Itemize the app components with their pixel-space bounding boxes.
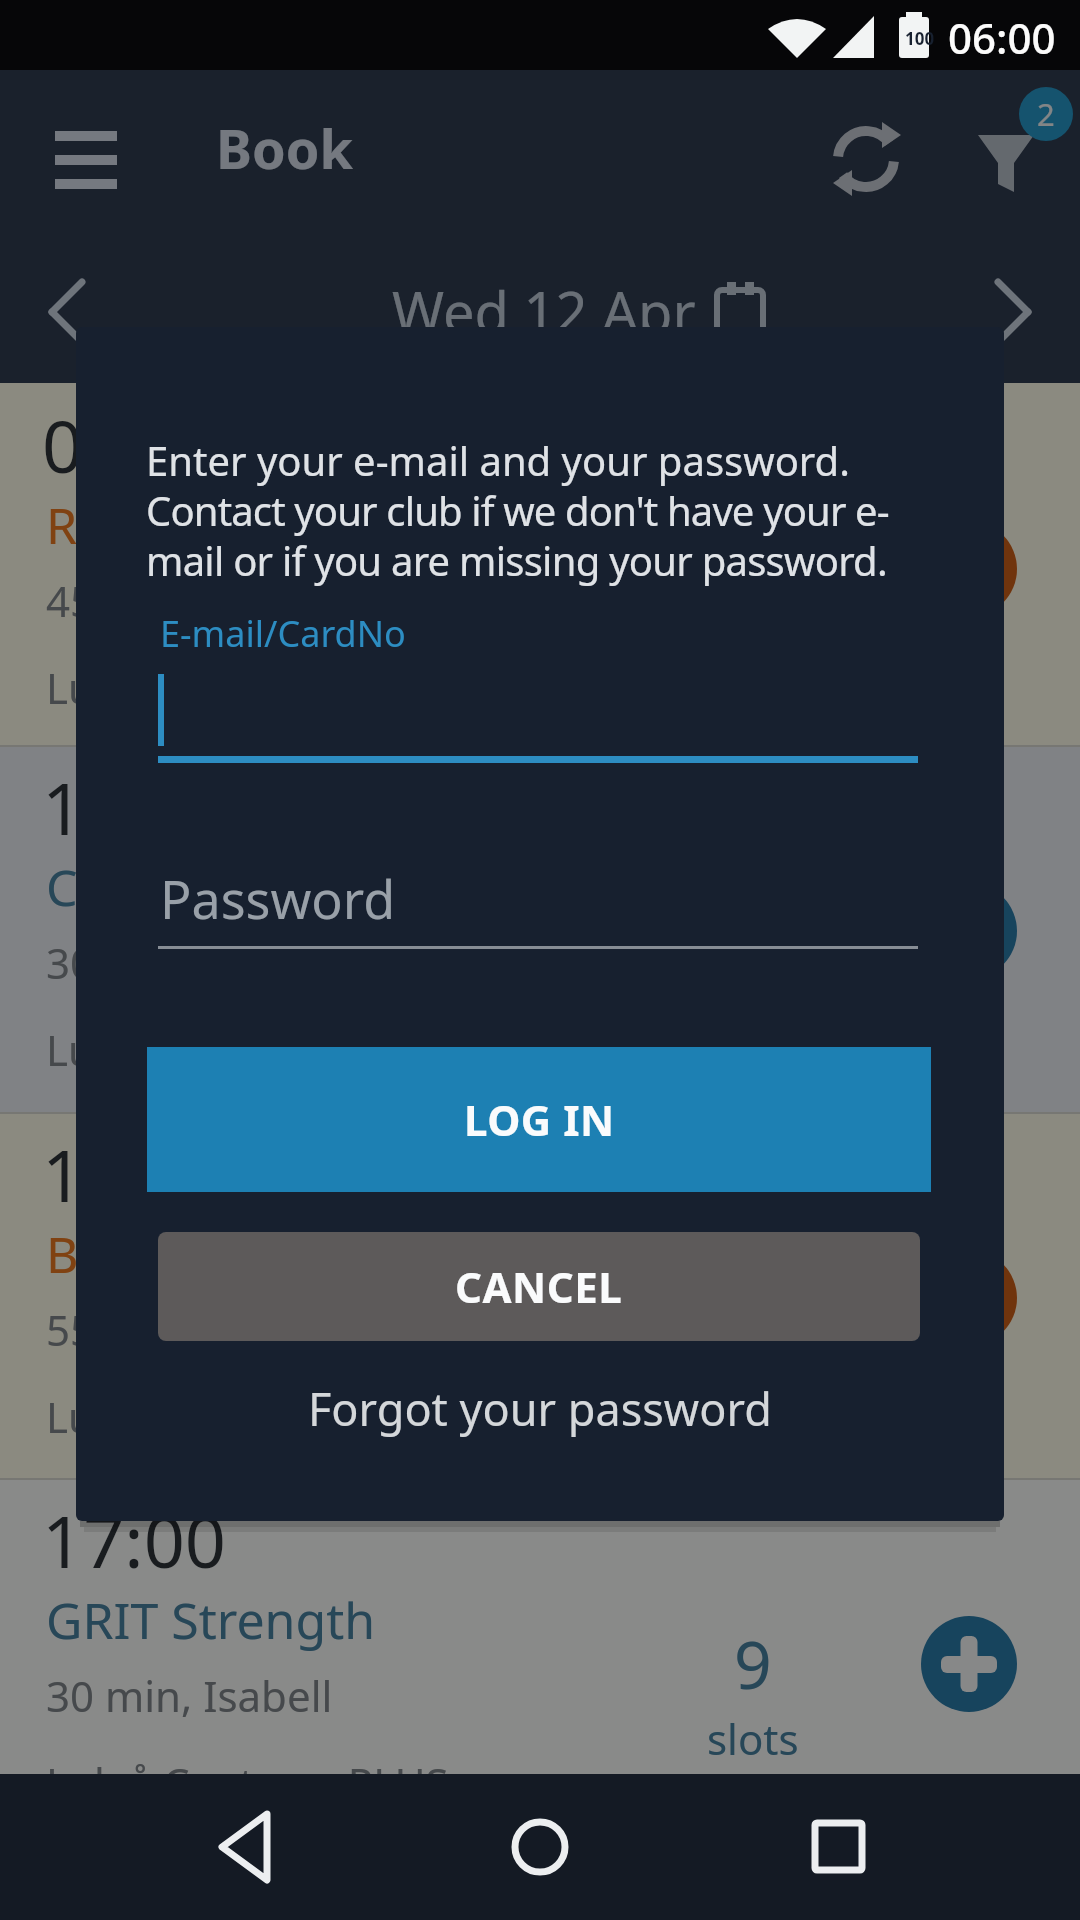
button[interactable] xyxy=(205,1800,295,1894)
staticText: RPM xyxy=(46,491,153,559)
staticText: 9 xyxy=(734,1618,772,1704)
button[interactable] xyxy=(824,117,908,201)
staticText: Luleå Centrum PLUS xyxy=(46,1021,449,1078)
staticText: 17:00 xyxy=(42,1491,227,1589)
button[interactable]: CANCEL xyxy=(158,1232,920,1341)
staticText: GRIT Strength xyxy=(46,1586,376,1654)
staticText: slots xyxy=(707,1710,799,1767)
staticText: E-mail/CardNo xyxy=(160,609,406,658)
staticText: 30 min, Isabell xyxy=(46,1667,333,1724)
staticText: Password xyxy=(160,863,396,934)
staticText: BODYPUMP xyxy=(46,1220,325,1288)
button[interactable]: LOG IN xyxy=(147,1047,931,1192)
staticText: Contact your club if we don't have your … xyxy=(146,483,889,537)
staticText: mail or if you are missing your password… xyxy=(146,533,887,587)
button[interactable] xyxy=(921,883,1017,979)
button[interactable] xyxy=(921,1616,1017,1712)
staticText: Book xyxy=(216,111,353,185)
button[interactable] xyxy=(792,1802,882,1892)
staticText: Enter your e-mail and your password. xyxy=(146,433,850,487)
staticText: 55 min, Eva xyxy=(46,1301,272,1358)
staticText: CANCEL xyxy=(455,1258,623,1315)
staticText: 45 min, Anna xyxy=(46,572,306,629)
staticText: 11:15 xyxy=(42,758,227,856)
staticText: LOG IN xyxy=(464,1091,615,1148)
button[interactable]: 09:45 xyxy=(0,383,1080,745)
button[interactable]: 17:00 xyxy=(0,1478,1080,1774)
button[interactable] xyxy=(495,1802,585,1892)
staticText: Wed 12 Apr xyxy=(392,273,696,349)
staticText: 100 xyxy=(905,27,935,50)
button[interactable]: 11:15 xyxy=(0,745,1080,1112)
staticText: Luleå Centrum PLUS xyxy=(46,1388,449,1445)
staticText: 30 min, Sara xyxy=(46,934,290,991)
staticText: Luleå Centrum PLUS xyxy=(46,1754,449,1811)
button[interactable] xyxy=(980,266,1050,358)
staticText: 06:00 xyxy=(948,9,1056,66)
button[interactable] xyxy=(962,120,1046,204)
staticText: CXWORX xyxy=(46,853,253,921)
button[interactable] xyxy=(42,116,130,204)
button[interactable]: 15:30 xyxy=(0,1112,1080,1478)
button[interactable]: Forgot your password xyxy=(76,1363,1004,1453)
button[interactable] xyxy=(30,266,100,358)
staticText: 09:45 xyxy=(42,396,227,494)
button[interactable] xyxy=(921,1250,1017,1346)
button[interactable] xyxy=(921,521,1017,617)
staticText: 2 xyxy=(1037,93,1055,135)
staticText: 15:30 xyxy=(42,1125,227,1223)
staticText: Forgot your password xyxy=(308,1378,772,1439)
staticText: Luleå Centrum PLUS xyxy=(46,659,449,716)
